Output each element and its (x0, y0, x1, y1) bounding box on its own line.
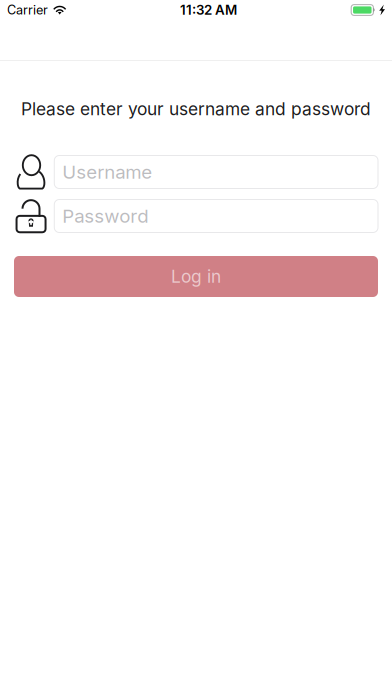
staticText: Please enter your username and password (21, 99, 371, 119)
staticText: Username (62, 161, 152, 183)
staticText: 11:32 AM (180, 2, 237, 18)
staticText: Password (62, 205, 148, 227)
staticText: Carrier (7, 2, 48, 17)
staticText: Log in (171, 266, 221, 287)
button[interactable]: Log in (14, 256, 378, 297)
